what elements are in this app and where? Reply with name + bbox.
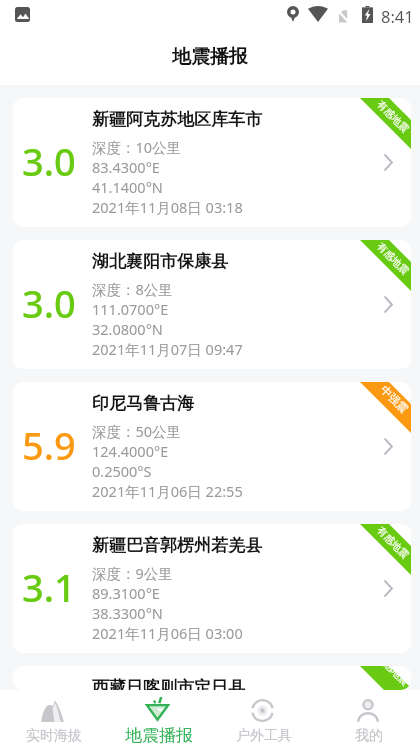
staticText: 有感地震	[374, 240, 411, 277]
staticText: 有感地震	[374, 524, 411, 561]
staticText: 124.4000°E	[92, 441, 169, 461]
staticText: 新疆阿克苏地区库车市	[92, 109, 262, 130]
staticText: 0.2500°S	[92, 461, 152, 481]
staticText: 深度：10公里	[92, 137, 182, 157]
staticText: 西藏日喀则市定日县	[92, 677, 245, 690]
staticText: 2021年11月06日 22:55	[92, 481, 243, 501]
staticText: 2021年11月07日 09:47	[92, 339, 243, 359]
staticText: 38.3300°N	[92, 603, 163, 623]
staticText: 3.0	[22, 277, 76, 329]
button[interactable]: 3.0	[13, 98, 411, 227]
staticText: 8:41	[381, 5, 414, 27]
staticText: 3.1	[22, 561, 76, 613]
button[interactable]: 3.3	[13, 666, 411, 690]
staticText: 户外工具	[236, 727, 292, 745]
staticText: 深度：9公里	[92, 563, 173, 583]
staticText: 地震播报	[172, 45, 248, 69]
staticText: 实时海拔	[26, 727, 82, 745]
staticText: 地震播报	[125, 725, 193, 746]
staticText: 3.0	[22, 135, 76, 187]
staticText: 有感地震	[374, 98, 411, 135]
staticText: 41.1400°N	[92, 177, 163, 197]
staticText: 32.0800°N	[92, 319, 163, 339]
staticText: 89.3100°E	[92, 583, 160, 603]
staticText: 83.4300°E	[92, 157, 160, 177]
button[interactable]: 地震播报	[105, 690, 210, 746]
staticText: 深度：8公里	[92, 279, 173, 299]
staticText: 湖北襄阳市保康县	[92, 251, 228, 272]
staticText: 深度：50公里	[92, 421, 182, 441]
staticText: 印尼马鲁古海	[92, 393, 194, 414]
staticText: 中强震	[378, 382, 411, 416]
button[interactable]: 3.1	[13, 524, 411, 653]
button[interactable]: 实时海拔	[0, 690, 105, 746]
staticText: 5.9	[22, 419, 76, 471]
staticText: 2021年11月08日 03:18	[92, 197, 243, 217]
staticText: 我的	[355, 727, 383, 745]
button[interactable]: 户外工具	[210, 690, 315, 746]
staticText: 111.0700°E	[92, 299, 169, 319]
button[interactable]: 3.0	[13, 240, 411, 369]
button[interactable]: 我的	[315, 690, 420, 746]
staticText: 新疆巴音郭楞州若羌县	[92, 535, 262, 556]
staticText: 有感地震	[374, 666, 411, 688]
staticText: 2021年11月06日 03:00	[92, 623, 243, 643]
button[interactable]: 5.9	[13, 382, 411, 511]
